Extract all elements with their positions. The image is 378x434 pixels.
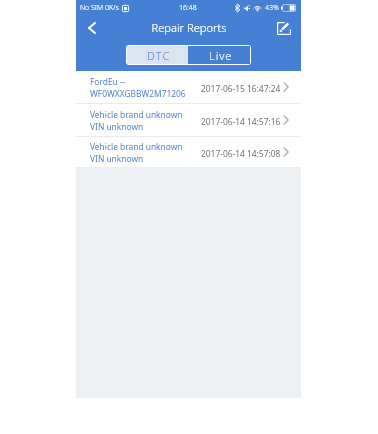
staticText: 2017-06-15 16:47:24 bbox=[201, 83, 281, 94]
staticText: Vehicle brand unknown bbox=[90, 141, 183, 152]
button[interactable]: Live bbox=[188, 46, 250, 64]
button[interactable]: New report bbox=[267, 15, 301, 41]
staticText: 43% bbox=[265, 3, 279, 13]
staticText: VIN unknown bbox=[90, 121, 144, 132]
staticText: 2017-06-14 14:57:08 bbox=[201, 148, 281, 159]
staticText: DTC bbox=[147, 48, 171, 63]
button[interactable]: DTC bbox=[127, 46, 188, 64]
staticText: Repair Reports bbox=[151, 20, 227, 35]
staticText: FordEu -- bbox=[90, 76, 126, 87]
staticText: VIN unknown bbox=[90, 153, 144, 164]
staticText: 16:48 bbox=[179, 3, 197, 13]
staticText: Vehicle brand unknown bbox=[90, 109, 183, 120]
staticText: No SIM 0K/s bbox=[80, 3, 119, 13]
button[interactable]: FordEu -- bbox=[76, 71, 301, 103]
button[interactable]: Vehicle brand unknown bbox=[76, 104, 301, 136]
button[interactable]: Back bbox=[76, 15, 107, 41]
staticText: WF0WXXGBBW2M71206 bbox=[90, 88, 186, 99]
staticText: 2017-06-14 14:57:16 bbox=[201, 116, 281, 127]
staticText: Live bbox=[209, 48, 233, 63]
button[interactable]: Vehicle brand unknown bbox=[76, 137, 301, 167]
